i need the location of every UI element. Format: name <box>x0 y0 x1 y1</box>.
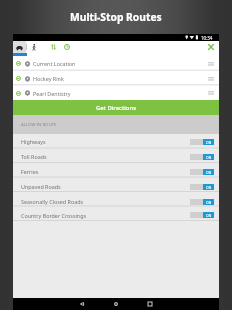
staticText: ON <box>206 170 212 175</box>
button[interactable]: Unpaved Roads <box>13 179 219 194</box>
staticText: ON <box>206 185 212 190</box>
button[interactable]: Seasonally Closed Roads <box>13 194 219 209</box>
staticText: Unpaved Roads <box>21 183 61 190</box>
staticText: Country Border Crossings <box>21 212 87 219</box>
staticText: Multi-Stop Routes <box>70 10 162 24</box>
staticText: Ferries <box>21 168 39 175</box>
staticText: Seasonally Closed Roads <box>21 198 84 205</box>
button[interactable]: Reverse stops <box>46 41 60 53</box>
button[interactable]: Recents <box>139 298 161 310</box>
staticText: Pearl Dentistry <box>33 90 71 97</box>
button[interactable]: Recent <box>60 41 74 53</box>
button[interactable]: Country Border Crossings <box>13 209 219 221</box>
button[interactable]: Pearl Dentistry <box>13 86 219 100</box>
button[interactable]: Close <box>203 41 219 53</box>
button[interactable]: Hockey Rink <box>13 71 219 86</box>
staticText: ON <box>206 140 212 145</box>
staticText: Current Location <box>33 60 76 67</box>
button[interactable]: Current Location <box>13 56 219 71</box>
staticText: 10:34 <box>201 35 213 41</box>
button[interactable]: Get Directions <box>13 100 219 115</box>
button[interactable]: Walk <box>27 41 40 53</box>
staticText: ON <box>206 200 212 205</box>
button[interactable]: Drive <box>13 41 26 53</box>
staticText: Toll Roads <box>21 153 47 160</box>
staticText: Get Directions <box>96 104 136 112</box>
staticText: Highways <box>21 138 46 145</box>
staticText: Hockey Rink <box>33 75 64 82</box>
button[interactable]: Highways <box>13 134 219 149</box>
button[interactable]: Ferries <box>13 164 219 179</box>
staticText: ON <box>206 155 212 160</box>
button[interactable]: Toll Roads <box>13 149 219 164</box>
button[interactable]: Back <box>71 298 93 310</box>
button[interactable]: Home <box>105 298 127 310</box>
staticText: ALLOW IN ROUTE <box>21 121 57 127</box>
staticText: ON <box>206 213 212 218</box>
